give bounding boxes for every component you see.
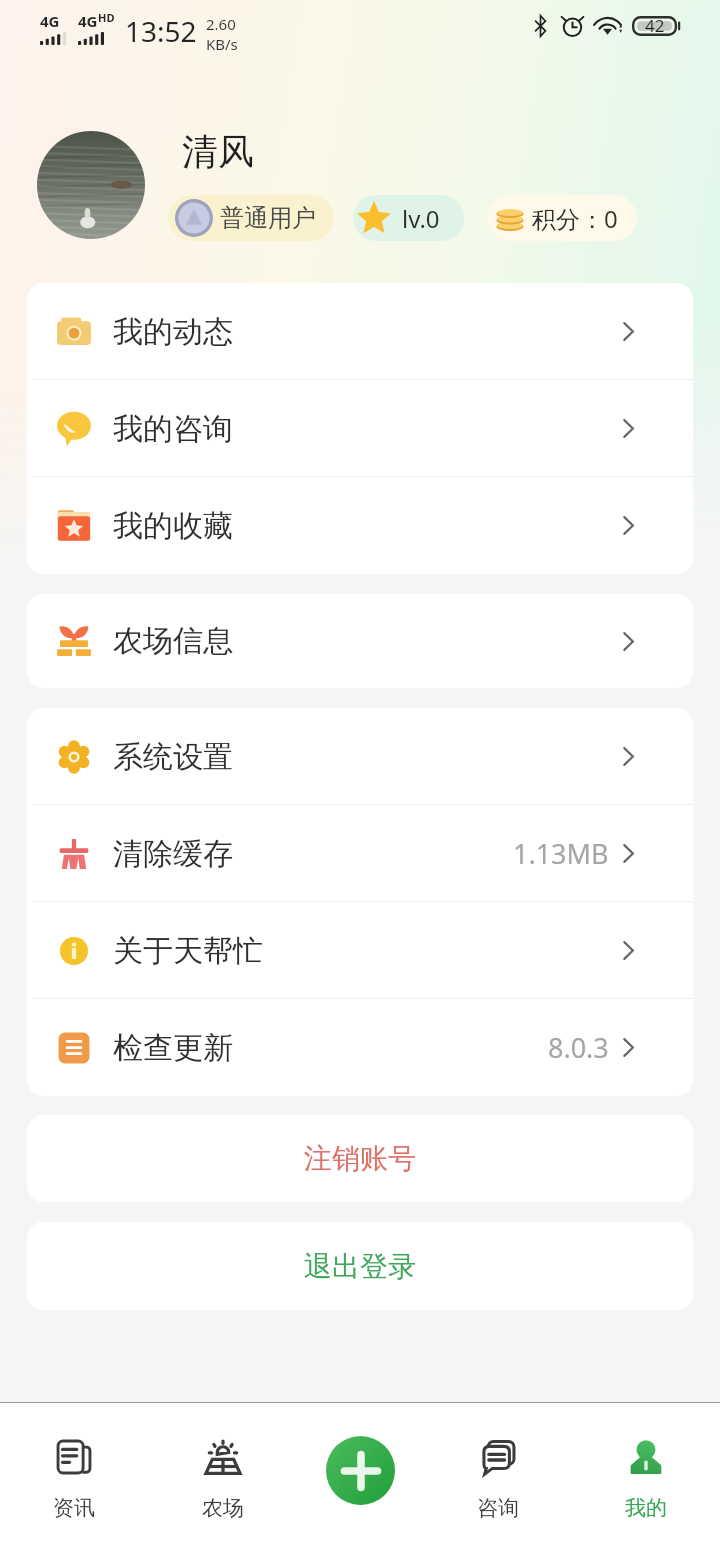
staticText: 退出登录 bbox=[304, 1249, 416, 1284]
staticText: HD bbox=[98, 10, 115, 25]
staticText: 清风 bbox=[182, 129, 254, 174]
button[interactable]: 积分：0 bbox=[487, 195, 637, 241]
button[interactable]: 资讯 bbox=[0, 1403, 148, 1544]
button[interactable]: 退出登录 bbox=[27, 1222, 693, 1310]
staticText: 我的 bbox=[625, 1495, 667, 1521]
staticText: 注销账号 bbox=[304, 1141, 416, 1176]
staticText: 42 bbox=[645, 14, 665, 37]
button[interactable]: 检查更新 bbox=[27, 999, 693, 1096]
button[interactable]: 关于天帮忙 bbox=[27, 902, 693, 999]
button[interactable]: 农场 bbox=[148, 1403, 297, 1544]
staticText: KB/s bbox=[206, 34, 238, 54]
staticText: 4G bbox=[40, 11, 60, 31]
staticText: lv.0 bbox=[402, 202, 440, 235]
staticText: 2.60 bbox=[206, 14, 236, 34]
button[interactable]: Add bbox=[326, 1436, 395, 1505]
button[interactable]: 我的咨询 bbox=[27, 380, 693, 477]
staticText: 积分：0 bbox=[532, 202, 618, 235]
staticText: 我的动态 bbox=[113, 313, 233, 351]
staticText: 农场 bbox=[202, 1495, 244, 1521]
button[interactable]: 我的动态 bbox=[27, 283, 693, 380]
staticText: 关于天帮忙 bbox=[113, 932, 263, 970]
staticText: 1.13MB bbox=[513, 835, 609, 872]
staticText: 系统设置 bbox=[113, 738, 233, 776]
button[interactable]: 注销账号 bbox=[27, 1115, 693, 1202]
staticText: 资讯 bbox=[53, 1495, 95, 1521]
button[interactable]: Profile photo bbox=[37, 131, 145, 239]
staticText: 4G bbox=[78, 11, 98, 31]
button[interactable]: 咨询 bbox=[423, 1403, 572, 1544]
button[interactable]: 系统设置 bbox=[27, 708, 693, 805]
button[interactable]: 清除缓存 bbox=[27, 805, 693, 902]
staticText: 咨询 bbox=[477, 1495, 519, 1521]
button[interactable]: 我的 bbox=[572, 1403, 720, 1544]
staticText: 8.0.3 bbox=[548, 1029, 609, 1066]
staticText: 我的收藏 bbox=[113, 507, 233, 545]
button[interactable]: 普通用户 bbox=[168, 195, 334, 241]
staticText: 普通用户 bbox=[220, 203, 316, 233]
button[interactable]: 我的收藏 bbox=[27, 477, 693, 574]
staticText: 13:52 bbox=[125, 12, 197, 50]
staticText: 清除缓存 bbox=[113, 835, 233, 873]
staticText: 农场信息 bbox=[113, 622, 233, 660]
button[interactable]: 农场信息 bbox=[27, 594, 693, 688]
staticText: 检查更新 bbox=[113, 1029, 233, 1067]
staticText: 我的咨询 bbox=[113, 410, 233, 448]
button[interactable]: lv.0 bbox=[353, 195, 464, 241]
